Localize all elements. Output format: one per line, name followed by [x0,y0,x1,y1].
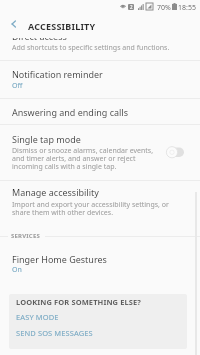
staticText: On [12,265,22,275]
button[interactable]: Manage accessibility [12,186,99,198]
button[interactable]: Single tap mode toggle [164,144,188,161]
staticText: Dismiss or snooze alarms, calendar event… [12,146,154,171]
staticText: Direct access [12,30,67,42]
staticText: Off [12,81,23,91]
staticText: SERVICES [11,232,40,240]
staticText: Add shortcuts to specific settings and f… [12,43,170,53]
staticText: 18:55 [178,3,196,13]
staticText: 2 [130,4,133,10]
button[interactable]: Finger Home Gestures [12,253,107,265]
button[interactable]: Answering and ending calls [12,106,128,118]
button[interactable]: Notification reminder [12,68,103,80]
staticText: Single tap mode [12,133,81,145]
staticText: 70% [157,3,171,13]
staticText: Import and export your accessibility set… [12,200,169,217]
button[interactable]: EASY MODE [16,312,59,322]
button[interactable]: SEND SOS MESSAGES [16,328,93,338]
button[interactable]: Back [4,14,24,34]
staticText: LOOKING FOR SOMETHING ELSE? [16,297,142,307]
staticText: ACCESSIBILITY [28,20,96,32]
